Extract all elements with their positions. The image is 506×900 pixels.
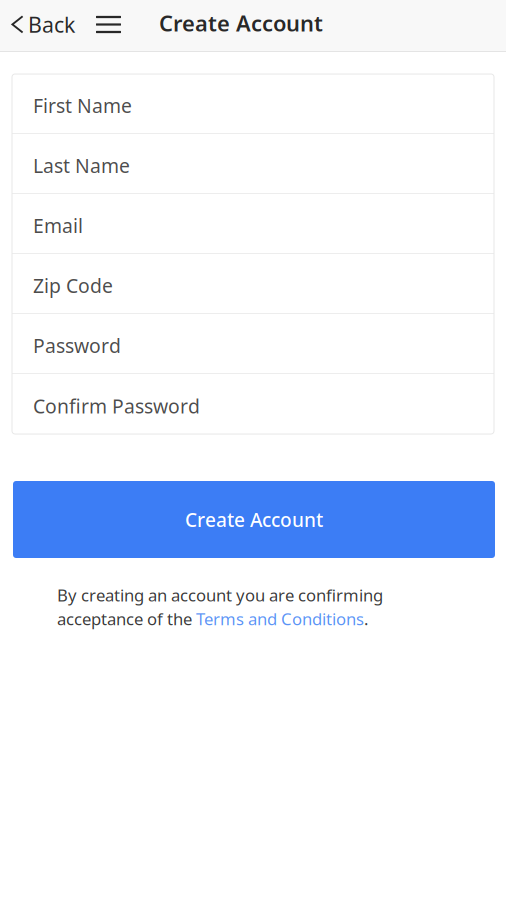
- staticText: Create Account: [159, 8, 323, 37]
- staticText: .: [364, 608, 368, 630]
- staticText: Last Name: [33, 153, 130, 178]
- staticText: Terms and Conditions: [196, 608, 364, 630]
- button[interactable]: Create Account: [13, 481, 495, 558]
- staticText: Zip Code: [33, 273, 113, 298]
- button[interactable]: Menu: [86, 0, 131, 49]
- staticText: Email: [33, 213, 83, 238]
- staticText: By creating an account you are confirmin…: [57, 584, 383, 606]
- staticText: Confirm Password: [33, 393, 200, 419]
- staticText: Back: [28, 10, 75, 39]
- staticText: Create Account: [185, 507, 323, 532]
- staticText: acceptance of the: [57, 608, 196, 630]
- staticText: Password: [33, 333, 121, 358]
- staticText: First Name: [33, 93, 132, 118]
- button[interactable]: Back: [0, 0, 86, 49]
- button[interactable]: Terms and Conditions: [196, 608, 364, 630]
